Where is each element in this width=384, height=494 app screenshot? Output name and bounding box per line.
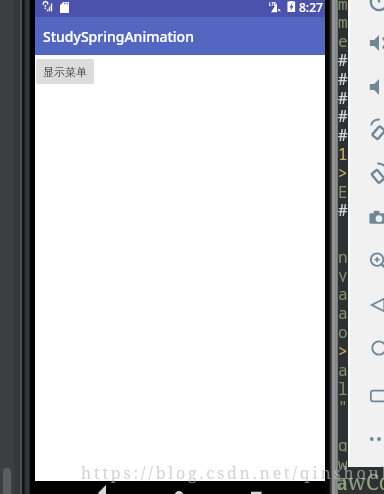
staticText: # xyxy=(338,87,348,105)
button[interactable]: Recents xyxy=(246,481,266,494)
staticText: https://blog.csdn.net/qinshoukui xyxy=(81,462,384,484)
staticText: > xyxy=(338,340,348,358)
button[interactable]: Back xyxy=(367,293,384,317)
staticText: # xyxy=(338,199,348,217)
button[interactable]: Back xyxy=(97,481,117,494)
staticText: w xyxy=(338,453,348,471)
staticText: > xyxy=(338,162,348,180)
button[interactable]: Zoom xyxy=(367,250,384,274)
staticText: a xyxy=(338,302,348,320)
staticText: " xyxy=(338,396,348,414)
button[interactable]: Home xyxy=(169,481,189,494)
staticText: 显示菜单 xyxy=(43,65,87,79)
staticText: a xyxy=(338,472,348,490)
button[interactable]: Overview xyxy=(367,384,384,408)
staticText: m xyxy=(338,11,348,29)
staticText: # xyxy=(338,68,348,86)
button[interactable]: Rotate left xyxy=(367,119,384,143)
staticText: e xyxy=(338,30,348,48)
button[interactable]: Volume up xyxy=(367,31,384,55)
staticText: 8:27 xyxy=(299,0,323,15)
staticText: g xyxy=(338,434,348,452)
button[interactable]: Rotate right xyxy=(367,163,384,187)
staticText: # xyxy=(338,105,348,123)
staticText: m xyxy=(338,0,348,11)
button[interactable]: Screenshot xyxy=(367,206,384,230)
staticText: # xyxy=(338,124,348,142)
button[interactable]: 显示菜单 xyxy=(36,59,94,84)
button[interactable]: Power xyxy=(367,0,384,14)
staticText: awCo T xyxy=(336,468,384,494)
staticText: # xyxy=(338,49,348,67)
button[interactable]: More xyxy=(367,427,384,451)
staticText: StudySpringAnimation xyxy=(43,27,194,46)
staticText: o xyxy=(338,321,348,339)
staticText: y xyxy=(338,264,348,282)
staticText: a xyxy=(338,359,348,377)
staticText: a xyxy=(338,283,348,301)
staticText: 1 xyxy=(338,143,348,161)
button[interactable]: Power button xyxy=(3,468,11,494)
staticText: n xyxy=(338,246,348,264)
button[interactable]: Volume down xyxy=(367,75,384,99)
button[interactable]: Home xyxy=(367,336,384,360)
staticText: l xyxy=(338,378,348,396)
staticText: E xyxy=(338,181,348,199)
